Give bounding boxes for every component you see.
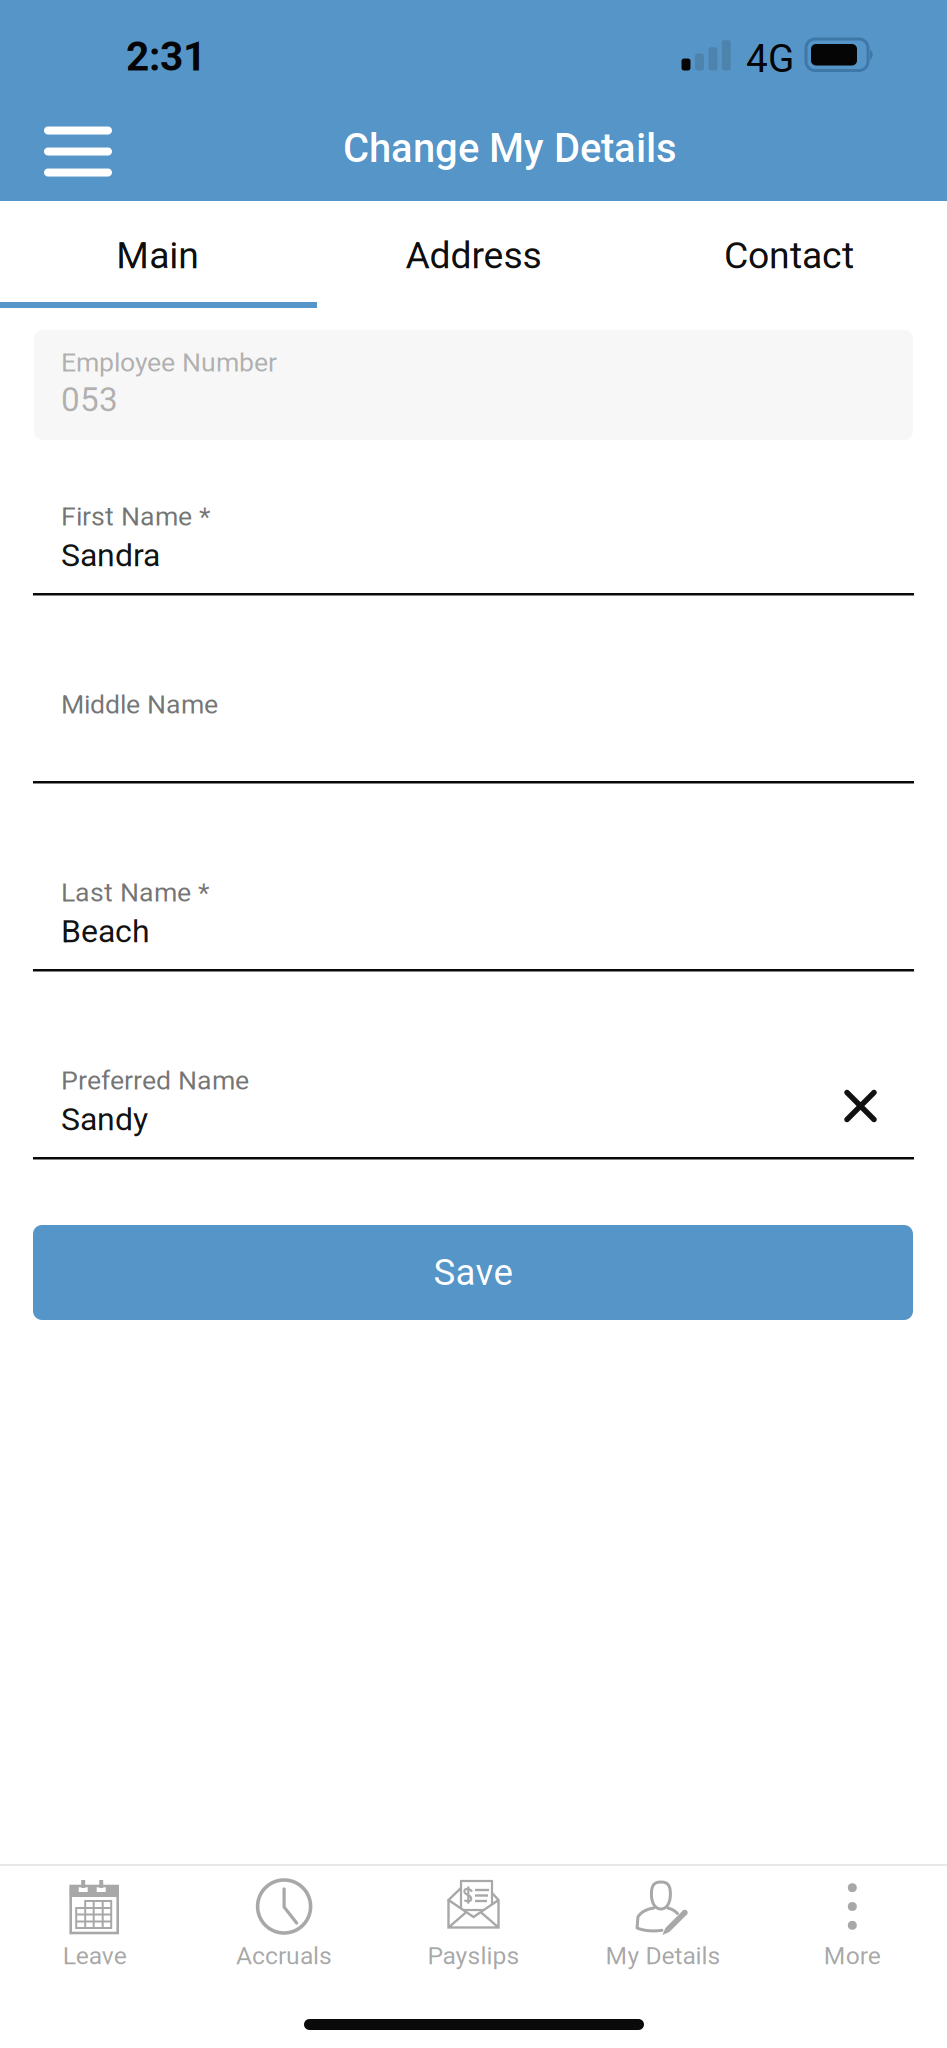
button[interactable]: My Details [568, 1875, 758, 1979]
button[interactable]: Menu [18, 101, 138, 202]
staticText: Contact [724, 234, 854, 277]
button[interactable]: More [758, 1875, 947, 1979]
staticText: Sandra [61, 537, 160, 574]
staticText: My Details [605, 1941, 720, 1970]
staticText: 4G [746, 36, 794, 81]
staticText: Address [405, 234, 541, 277]
staticText: Employee Number [61, 347, 277, 378]
staticText: Change My Details [343, 125, 677, 172]
button[interactable]: Accruals [189, 1875, 379, 1979]
staticText: More [824, 1941, 881, 1970]
button[interactable]: Leave [0, 1875, 189, 1979]
staticText: Sandy [61, 1101, 148, 1138]
staticText: Preferred Name [61, 1065, 249, 1096]
button[interactable]: Clear [841, 1086, 880, 1125]
button[interactable]: Save [33, 1225, 913, 1320]
button[interactable]: Main [0, 201, 316, 302]
staticText: Save [433, 1251, 512, 1294]
staticText: Leave [63, 1941, 127, 1970]
staticText: 2:31 [126, 33, 206, 80]
button[interactable]: Contact [631, 201, 947, 302]
button[interactable]: Payslips [379, 1875, 568, 1979]
staticText: Beach [61, 913, 150, 950]
staticText: Middle Name [61, 689, 218, 720]
staticText: Payslips [427, 1941, 519, 1970]
staticText: 053 [61, 380, 118, 419]
staticText: Main [116, 234, 199, 277]
staticText: First Name * [61, 501, 210, 532]
staticText: Accruals [236, 1941, 332, 1970]
staticText: Last Name * [61, 877, 209, 908]
button[interactable]: Address [316, 201, 631, 302]
